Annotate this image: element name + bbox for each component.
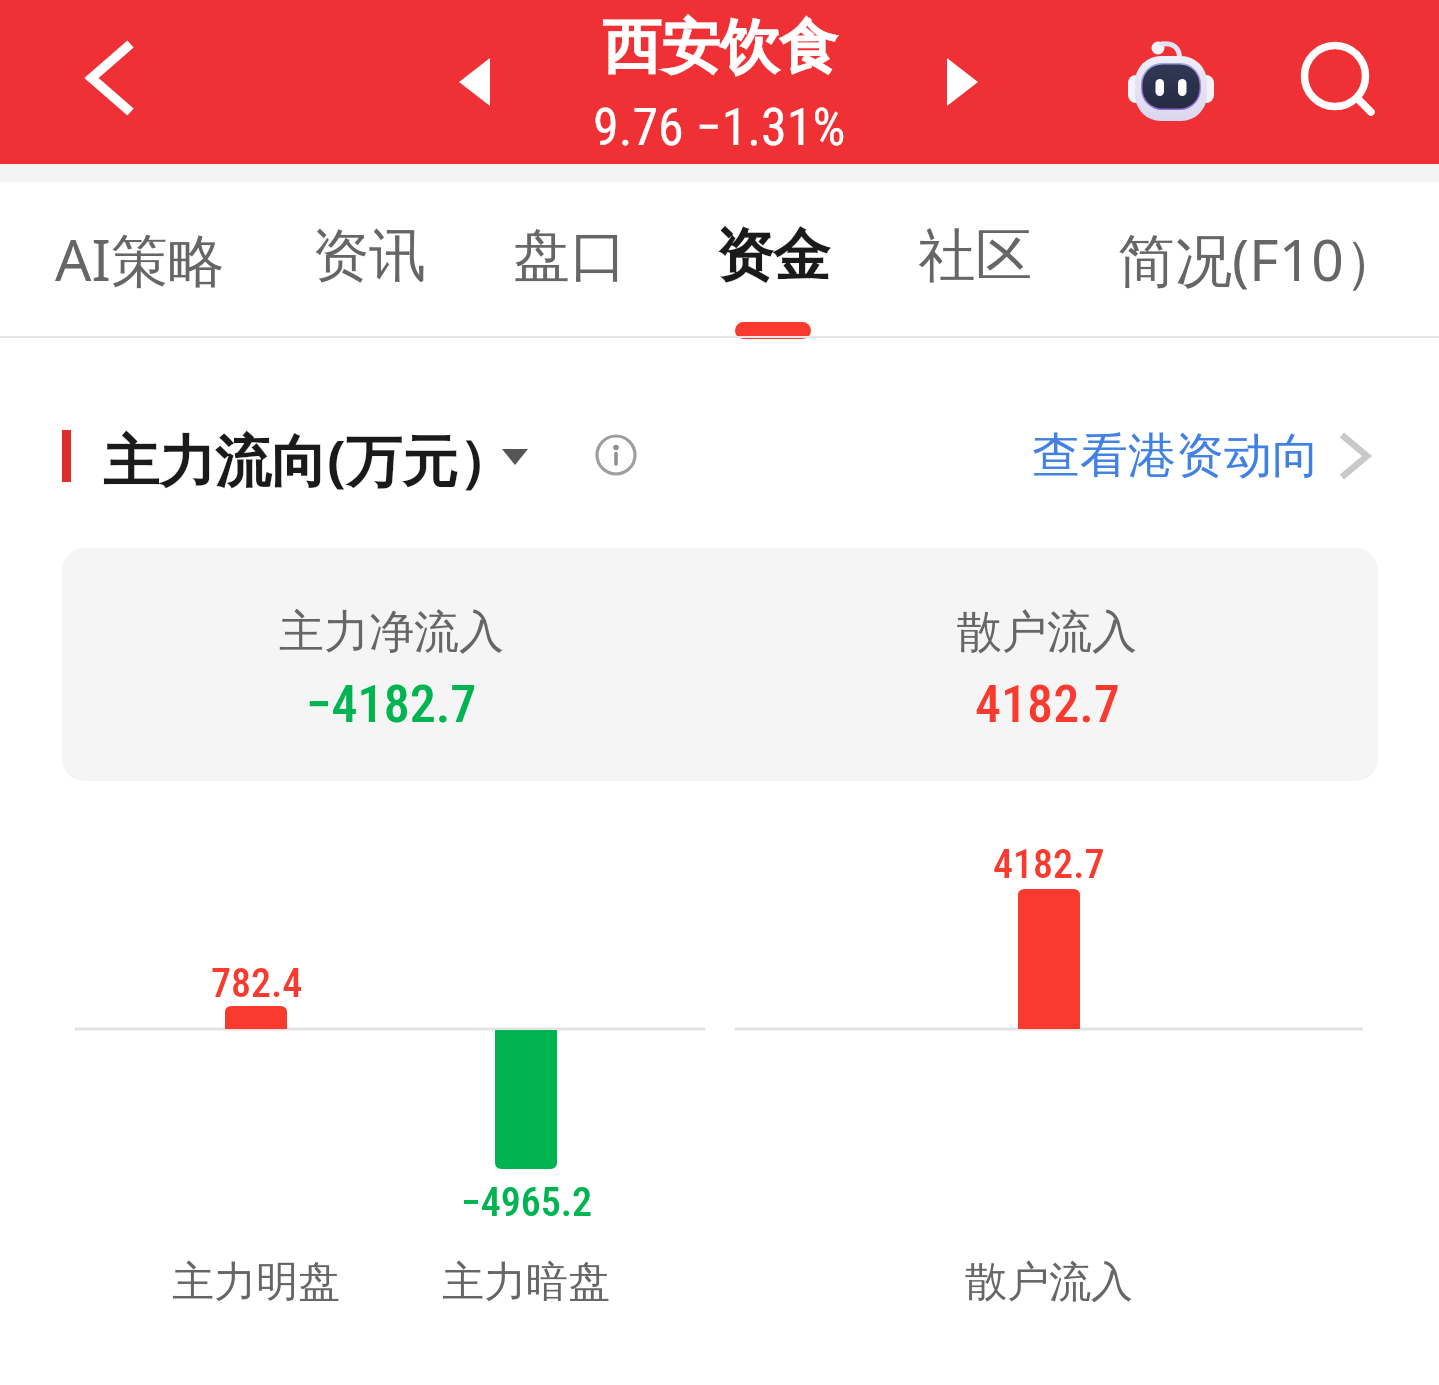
staticText: −4182.7 bbox=[306, 674, 477, 735]
staticText: 社区 bbox=[918, 220, 1032, 292]
staticText: 主力暗盘 bbox=[442, 1256, 610, 1309]
button[interactable]: 资讯 bbox=[159, 182, 579, 338]
staticText: AI策略 bbox=[55, 220, 225, 298]
staticText: 4182.7 bbox=[975, 674, 1120, 735]
button[interactable]: 资金 bbox=[563, 182, 983, 338]
staticText: 资金 bbox=[716, 220, 830, 292]
button[interactable]: AI策略 bbox=[0, 182, 350, 338]
staticText: 主力流向(万元） bbox=[103, 421, 514, 497]
staticText: 西安饮食 bbox=[602, 10, 838, 84]
staticText: 782.4 bbox=[211, 960, 303, 1007]
staticText: 9.76 −1.31% bbox=[593, 97, 846, 158]
staticText: 简况(F10） bbox=[1118, 220, 1401, 298]
staticText: 主力净流入 bbox=[279, 604, 504, 661]
button[interactable]: 简况(F10） bbox=[1049, 182, 1439, 338]
staticText: 主力明盘 bbox=[172, 1256, 340, 1309]
button[interactable]: 主力流向(万元） bbox=[90, 406, 560, 492]
button[interactable]: Previous stock bbox=[422, 30, 526, 134]
button[interactable]: 社区 bbox=[765, 182, 1185, 338]
staticText: 盘口 bbox=[513, 220, 627, 292]
button[interactable]: 盘口 bbox=[360, 182, 780, 338]
button[interactable]: Info bbox=[586, 425, 646, 485]
staticText: 查看港资动向 bbox=[1032, 426, 1320, 486]
button[interactable]: Next stock bbox=[911, 30, 1015, 134]
staticText: 4182.7 bbox=[993, 841, 1105, 888]
button[interactable]: AI assistant bbox=[1115, 25, 1225, 135]
staticText: −4965.2 bbox=[461, 1179, 593, 1226]
staticText: 散户流入 bbox=[957, 604, 1137, 661]
button[interactable]: 主力净流入 bbox=[62, 548, 1378, 781]
staticText: 散户流入 bbox=[965, 1256, 1133, 1309]
button[interactable]: 查看港资动向 bbox=[1032, 426, 1386, 486]
button[interactable]: Search bbox=[1285, 26, 1395, 136]
button[interactable]: Back bbox=[56, 23, 166, 133]
staticText: 资讯 bbox=[312, 220, 426, 292]
